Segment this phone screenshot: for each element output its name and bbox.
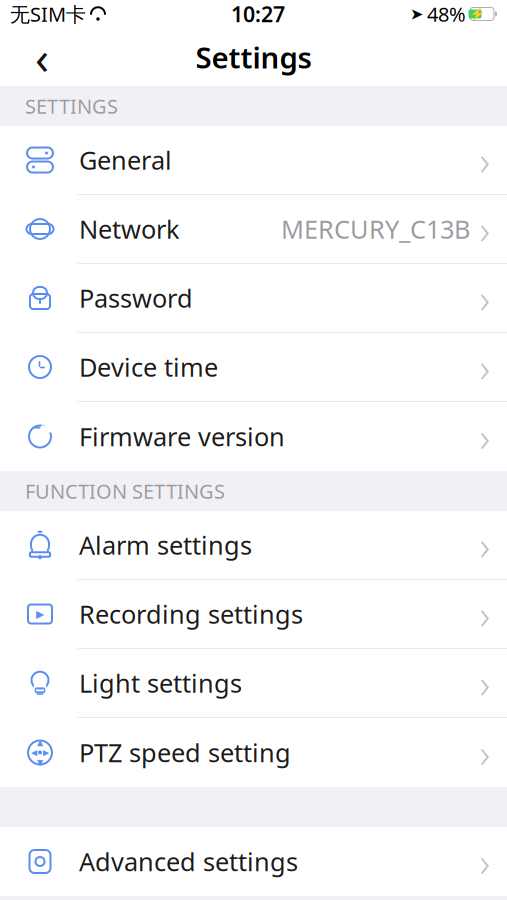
button[interactable]: Firmware version [0, 402, 507, 471]
staticText: ▼ [37, 758, 43, 767]
staticText: › [479, 410, 490, 463]
staticText: Settings [195, 37, 311, 76]
staticText: Light settings [79, 666, 242, 700]
staticText: ‹ [35, 27, 49, 87]
button[interactable]: Device time [0, 333, 507, 402]
staticText: ▲ [37, 738, 43, 747]
staticText: Firmware version [79, 420, 285, 453]
button[interactable]: Network [0, 195, 507, 264]
staticText: ⚡ [469, 7, 484, 21]
staticText: ➤ [410, 5, 423, 23]
button[interactable]: ▶ [0, 580, 507, 649]
staticText: › [479, 656, 490, 709]
button[interactable]: Alarm settings [0, 511, 507, 580]
staticText: Password [79, 281, 193, 315]
staticText: MERCURY_C13B [281, 212, 470, 246]
staticText: › [479, 835, 490, 888]
staticText: ▶ [36, 608, 44, 620]
staticText: Network [79, 212, 180, 246]
staticText: PTZ speed setting [79, 736, 291, 769]
staticText: › [479, 202, 490, 255]
staticText: Device time [79, 350, 218, 384]
staticText: › [479, 340, 490, 393]
staticText: Recording settings [79, 597, 303, 631]
staticText: ▶ [43, 748, 49, 757]
staticText: Advanced settings [79, 845, 298, 878]
staticText: FUNCTION SETTINGS [25, 478, 225, 504]
staticText: ◀ [31, 748, 37, 757]
staticText: Alarm settings [79, 528, 252, 562]
button[interactable]: Advanced settings [0, 827, 507, 896]
button[interactable]: Back [16, 29, 68, 85]
button[interactable]: General [0, 126, 507, 195]
staticText: General [79, 143, 172, 177]
staticText: › [479, 133, 490, 186]
staticText: › [479, 726, 490, 779]
staticText: SETTINGS [25, 93, 118, 119]
button[interactable]: ▲ [0, 718, 507, 787]
button[interactable]: Password [0, 264, 507, 333]
staticText: › [479, 587, 490, 640]
button[interactable]: Light settings [0, 649, 507, 718]
staticText: › [479, 271, 490, 324]
staticText: 10:27 [231, 0, 285, 28]
staticText: 48% [427, 1, 466, 27]
staticText: › [479, 518, 490, 571]
staticText: 无SIM卡 [10, 1, 86, 27]
